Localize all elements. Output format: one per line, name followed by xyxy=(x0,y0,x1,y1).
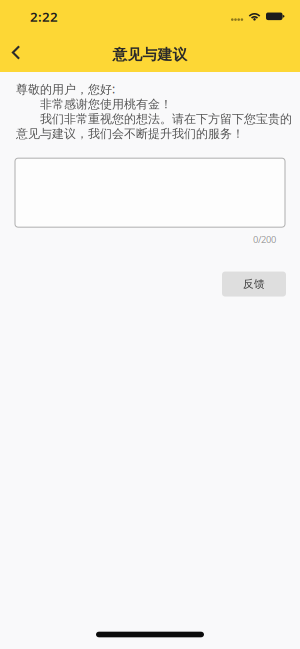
staticText: 反馈 xyxy=(243,277,265,291)
staticText: 0/200 xyxy=(253,233,276,246)
button[interactable]: 反馈 xyxy=(222,271,286,296)
staticText: 2:22 xyxy=(30,8,58,25)
staticText: 尊敬的用户，您好: 非常感谢您使用桃有金！ 我们非常重视您的想法。请在下方留下您… xyxy=(16,81,292,141)
staticText: 意见与建议 xyxy=(112,45,187,63)
button[interactable]: 返回 xyxy=(0,33,32,72)
